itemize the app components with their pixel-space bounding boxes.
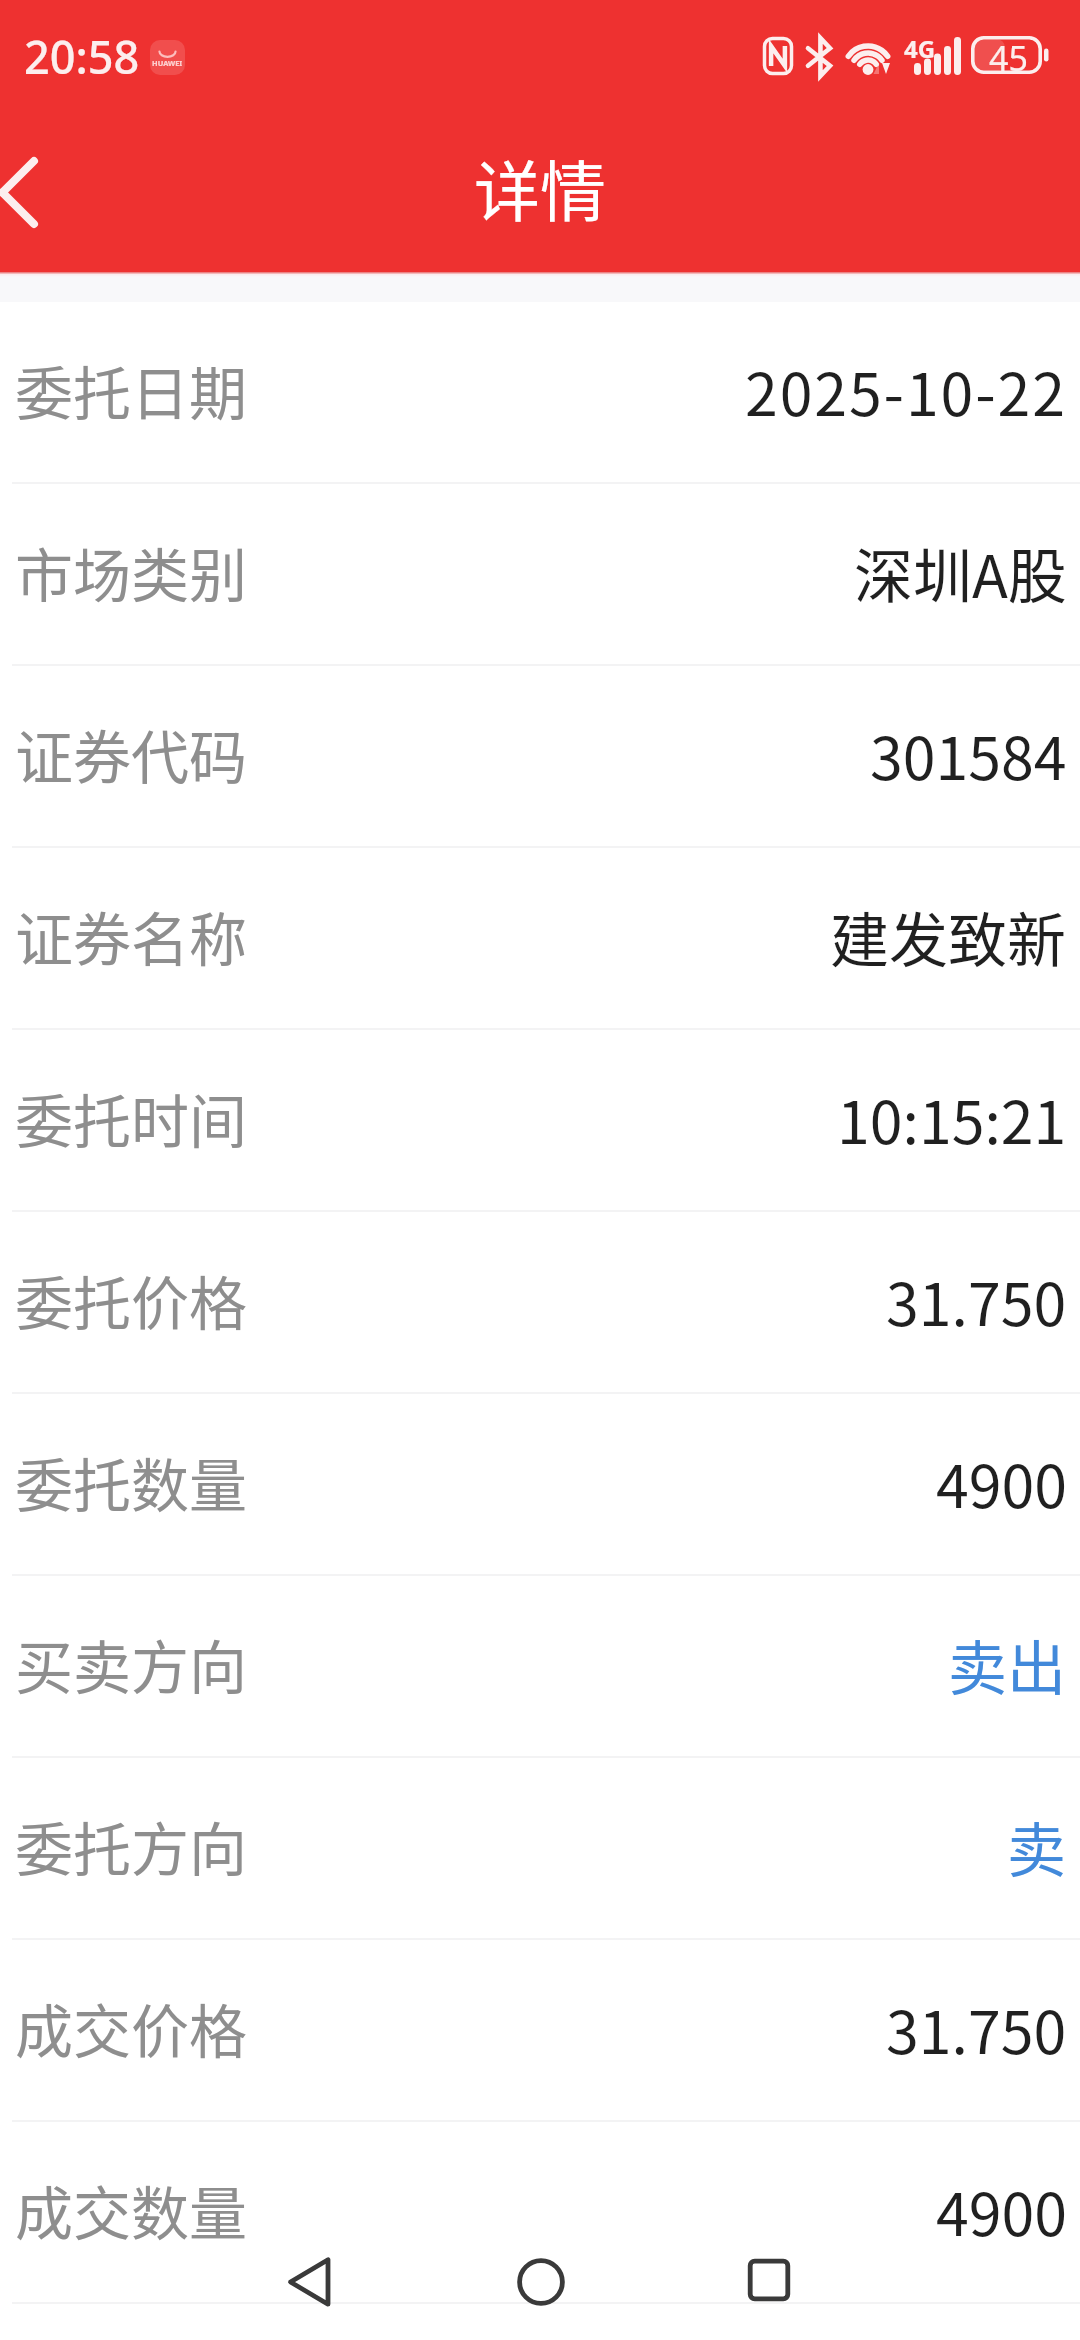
staticText: 委托价格 — [15, 1258, 248, 1342]
staticText: 委托日期 — [15, 348, 248, 432]
staticText: 深圳A股 — [854, 530, 1067, 615]
staticText: 市场类别 — [15, 530, 248, 614]
staticText: 委托方向 — [15, 1804, 248, 1888]
staticText: 2025-10-22 — [745, 348, 1067, 433]
staticText: 买卖方向 — [15, 1622, 248, 1706]
staticText: 31.750 — [886, 1258, 1067, 1343]
staticText: 4G — [904, 32, 936, 65]
button[interactable]: Home — [491, 2232, 591, 2332]
staticText: 委托时间 — [15, 1076, 248, 1160]
staticText: 20:58 — [24, 26, 140, 87]
button[interactable]: 证券代码 — [0, 666, 1080, 848]
button[interactable]: 成交数量 — [0, 2122, 1080, 2304]
staticText: 301584 — [870, 712, 1067, 797]
staticText: 证券代码 — [15, 712, 248, 796]
staticText: 成交数量 — [15, 2168, 248, 2252]
button[interactable]: 委托日期 — [0, 302, 1080, 484]
staticText: 卖出 — [948, 1622, 1067, 1707]
button[interactable]: 委托数量 — [0, 1394, 1080, 1576]
button[interactable]: 委托方向 — [0, 1758, 1080, 1940]
button[interactable]: Back — [258, 2232, 358, 2332]
button[interactable]: 成交价格 — [0, 1940, 1080, 2122]
staticText: 委托数量 — [15, 1440, 248, 1524]
staticText: 成交价格 — [15, 1986, 248, 2070]
button[interactable]: 买卖方向 — [0, 1576, 1080, 1758]
button[interactable]: 委托价格 — [0, 1212, 1080, 1394]
button[interactable]: 市场类别 — [0, 484, 1080, 666]
staticText: 建发致新 — [830, 894, 1067, 979]
button[interactable]: Back — [0, 134, 110, 256]
staticText: 10:15:21 — [837, 1076, 1067, 1161]
button[interactable]: 委托时间 — [0, 1030, 1080, 1212]
button[interactable]: 证券名称 — [0, 848, 1080, 1030]
staticText: 4900 — [936, 2168, 1067, 2253]
button[interactable]: Recent apps — [719, 2230, 819, 2330]
staticText: 4900 — [936, 1440, 1067, 1525]
staticText: 详情 — [474, 139, 606, 235]
staticText: HUAWEI — [152, 58, 183, 68]
staticText: 45 — [989, 35, 1028, 79]
staticText: 31.750 — [886, 1986, 1067, 2071]
staticText: 卖 — [1007, 1804, 1067, 1889]
staticText: 证券名称 — [15, 894, 248, 978]
